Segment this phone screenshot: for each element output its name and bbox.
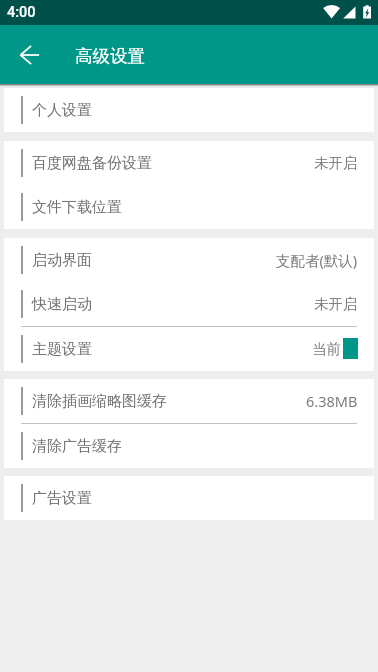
staticText: 未开启 xyxy=(314,154,358,172)
staticText: 主题设置 xyxy=(32,340,92,359)
button[interactable]: 主题设置 xyxy=(4,327,374,371)
button[interactable]: 清除广告缓存 xyxy=(4,424,374,468)
staticText: 启动界面 xyxy=(32,251,92,270)
button[interactable]: 清除插画缩略图缓存 xyxy=(4,379,374,423)
staticText: 高级设置 xyxy=(75,45,145,67)
button[interactable]: 百度网盘备份设置 xyxy=(4,141,374,185)
staticText: 清除广告缓存 xyxy=(32,437,122,456)
button[interactable]: 文件下载位置 xyxy=(4,185,374,229)
staticText: 4:00 xyxy=(7,4,36,21)
button[interactable]: 快速启动 xyxy=(4,282,374,326)
staticText: 当前 xyxy=(312,340,341,358)
staticText: 百度网盘备份设置 xyxy=(32,154,152,173)
staticText: 未开启 xyxy=(314,295,358,313)
staticText: 文件下载位置 xyxy=(32,198,122,217)
staticText: 个人设置 xyxy=(32,101,92,120)
button[interactable]: 个人设置 xyxy=(4,88,374,132)
button[interactable]: Back xyxy=(11,36,48,73)
button[interactable]: 广告设置 xyxy=(4,476,374,520)
staticText: 快速启动 xyxy=(32,295,92,314)
staticText: 清除插画缩略图缓存 xyxy=(32,392,167,411)
staticText: 支配者(默认) xyxy=(276,250,358,270)
button[interactable]: 启动界面 xyxy=(4,238,374,282)
staticText: 6.38MB xyxy=(306,391,358,411)
staticText: 广告设置 xyxy=(32,489,92,508)
